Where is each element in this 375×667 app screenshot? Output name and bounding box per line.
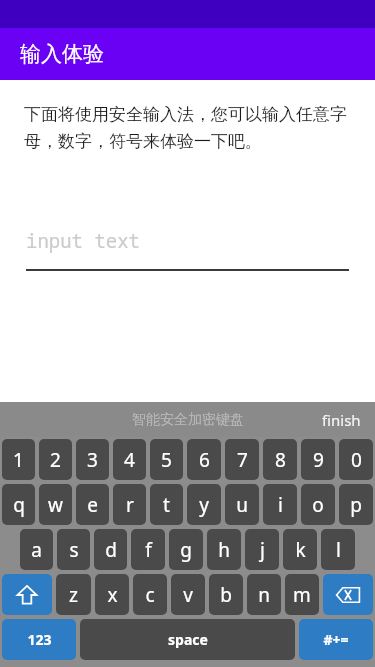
staticText: q [13, 492, 25, 518]
staticText: p [350, 492, 362, 518]
staticText: u [236, 492, 248, 518]
staticText: o [312, 492, 324, 518]
staticText: 4 [124, 447, 135, 473]
button[interactable]: 输入体验 [0, 28, 375, 80]
staticText: g [180, 537, 192, 563]
button[interactable]: space [80, 619, 295, 660]
button[interactable]: 1 [2, 439, 35, 480]
button[interactable]: 3 [76, 439, 109, 480]
staticText: f [145, 537, 152, 563]
button[interactable]: n [247, 574, 281, 615]
button[interactable]: e [76, 484, 109, 525]
button[interactable]: c [133, 574, 167, 615]
button[interactable]: i [263, 484, 297, 525]
staticText: 6 [199, 447, 210, 473]
button[interactable]: x [95, 574, 129, 615]
staticText: d [105, 537, 117, 563]
staticText: b [220, 582, 232, 608]
button[interactable]: u [225, 484, 259, 525]
button[interactable]: p [339, 484, 373, 525]
staticText: 123 [27, 630, 52, 649]
button[interactable]: 5 [150, 439, 183, 480]
staticText: y [199, 492, 209, 518]
staticText: t [163, 492, 170, 518]
button[interactable]: v [171, 574, 205, 615]
staticText: 5 [161, 447, 172, 473]
staticText: 0 [351, 447, 362, 473]
button[interactable]: finish [308, 402, 375, 437]
staticText: 智能安全加密键盘 [132, 411, 244, 429]
button[interactable]: t [150, 484, 183, 525]
button[interactable]: input text [26, 228, 349, 271]
staticText: a [31, 537, 42, 563]
staticText: 7 [237, 447, 248, 473]
button[interactable]: 6 [187, 439, 221, 480]
button[interactable]: 7 [225, 439, 259, 480]
staticText: j [260, 537, 265, 563]
button[interactable]: 2 [39, 439, 72, 480]
staticText: z [69, 582, 78, 608]
staticText: 输入体验 [20, 41, 104, 67]
button[interactable]: a [20, 529, 53, 570]
staticText: e [87, 492, 98, 518]
button[interactable]: s [57, 529, 90, 570]
button[interactable]: d [94, 529, 127, 570]
staticText: m [293, 582, 311, 608]
staticText: 9 [313, 447, 324, 473]
staticText: c [145, 582, 155, 608]
staticText: v [183, 582, 193, 608]
staticText: k [295, 537, 306, 563]
button[interactable]: z [56, 574, 91, 615]
button[interactable]: r [113, 484, 146, 525]
staticText: x [107, 582, 118, 608]
button[interactable]: 0 [339, 439, 373, 480]
button[interactable]: l [321, 529, 355, 570]
staticText: i [278, 492, 283, 518]
staticText: s [69, 537, 79, 563]
button[interactable]: #+= [299, 619, 373, 660]
button[interactable]: 8 [263, 439, 297, 480]
staticText: l [336, 537, 341, 563]
button[interactable]: Shift [2, 574, 52, 615]
staticText: n [258, 582, 270, 608]
staticText: h [218, 537, 230, 563]
staticText: input text [26, 228, 141, 254]
button[interactable]: 9 [301, 439, 335, 480]
button[interactable]: h [207, 529, 241, 570]
button[interactable]: 4 [113, 439, 146, 480]
button[interactable]: b [209, 574, 243, 615]
staticText: finish [322, 410, 361, 430]
button[interactable]: y [187, 484, 221, 525]
staticText: r [126, 492, 134, 518]
button[interactable]: 123 [2, 619, 76, 660]
staticText: space [168, 630, 208, 649]
button[interactable]: q [2, 484, 35, 525]
staticText: 2 [50, 447, 61, 473]
staticText: 1 [13, 447, 24, 473]
button[interactable]: Backspace [323, 574, 373, 615]
staticText: w [48, 492, 63, 518]
staticText: #+= [323, 630, 349, 649]
button[interactable]: f [131, 529, 165, 570]
staticText: 下面将使用安全输入法，您可以输入任意字母，数字，符号来体验一下吧。 [24, 104, 351, 152]
button[interactable]: g [169, 529, 203, 570]
button[interactable]: o [301, 484, 335, 525]
staticText: 3 [87, 447, 98, 473]
button[interactable]: j [245, 529, 279, 570]
button[interactable]: w [39, 484, 72, 525]
staticText: 8 [275, 447, 286, 473]
button[interactable]: k [283, 529, 317, 570]
button[interactable]: m [285, 574, 319, 615]
